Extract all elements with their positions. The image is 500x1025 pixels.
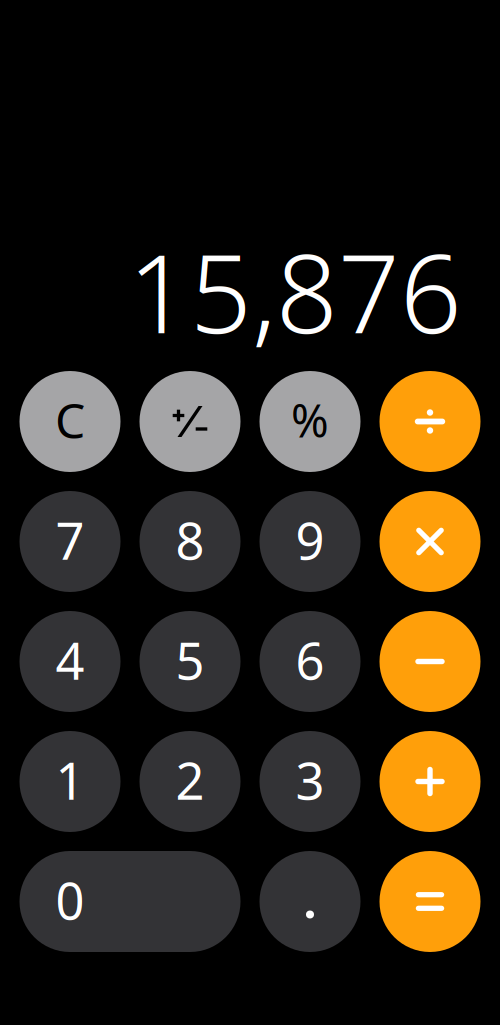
button[interactable]: Multiply bbox=[379, 491, 480, 592]
button[interactable]: Minus bbox=[379, 611, 480, 712]
button[interactable]: 9 bbox=[259, 491, 360, 592]
button[interactable]: 5 bbox=[139, 611, 240, 712]
staticText: C bbox=[55, 388, 85, 452]
staticText: 4 bbox=[55, 626, 84, 694]
staticText: 1 bbox=[55, 746, 84, 814]
button[interactable]: 8 bbox=[139, 491, 240, 592]
button[interactable]: 2 bbox=[139, 731, 240, 832]
button[interactable]: % bbox=[259, 371, 360, 472]
button[interactable]: Equals bbox=[379, 851, 480, 952]
staticText: 9 bbox=[295, 506, 324, 574]
staticText: 7 bbox=[55, 506, 84, 574]
staticText: 0 bbox=[55, 866, 84, 934]
button[interactable]: 0 bbox=[19, 851, 240, 952]
button[interactable]: 4 bbox=[19, 611, 120, 712]
staticText: 6 bbox=[295, 626, 324, 694]
button[interactable]: Decimal point bbox=[259, 851, 360, 952]
staticText: 5 bbox=[175, 626, 204, 694]
staticText: 2 bbox=[175, 746, 204, 814]
staticText: 3 bbox=[295, 746, 324, 814]
button[interactable]: 3 bbox=[259, 731, 360, 832]
button[interactable]: Toggle sign bbox=[139, 371, 240, 472]
button[interactable]: 6 bbox=[259, 611, 360, 712]
staticText: 15,876 bbox=[128, 220, 462, 363]
staticText: 8 bbox=[175, 506, 204, 574]
button[interactable]: Plus bbox=[379, 731, 480, 832]
button[interactable]: Divide bbox=[379, 371, 480, 472]
button[interactable]: 7 bbox=[19, 491, 120, 592]
button[interactable]: 1 bbox=[19, 731, 120, 832]
button[interactable]: C bbox=[19, 371, 120, 472]
staticText: % bbox=[291, 390, 329, 450]
